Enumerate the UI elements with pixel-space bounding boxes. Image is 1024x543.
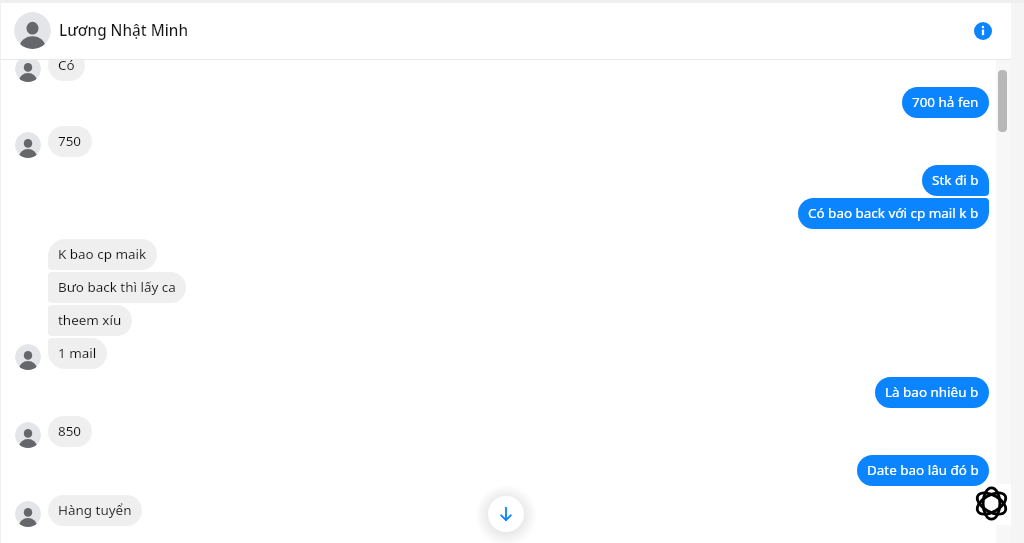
staticText: K bao cp maik <box>58 245 147 263</box>
staticText: Date bao lâu đó b <box>867 461 979 479</box>
button[interactable]: Stk đi b <box>922 165 989 196</box>
button[interactable]: K bao cp maik <box>48 239 157 270</box>
staticText: 750 <box>58 132 82 150</box>
button[interactable]: 750 <box>48 126 92 157</box>
button[interactable]: 700 hả fen <box>902 87 989 118</box>
button[interactable]: 1 mail <box>48 338 107 369</box>
staticText: Hàng tuyển <box>58 501 132 519</box>
button[interactable]: Hàng tuyển <box>48 495 142 526</box>
button[interactable]: Scroll to bottom <box>476 484 536 543</box>
staticText: Có <box>58 56 75 74</box>
staticText: Là bao nhiêu b <box>885 383 979 401</box>
button[interactable]: Lương Nhật Minh <box>0 2 1024 59</box>
staticText: 700 hả fen <box>912 93 979 111</box>
button[interactable]: Assistive overlay button <box>966 484 1024 525</box>
staticText: Bưo back thì lấy ca <box>58 278 176 296</box>
button[interactable]: Conversation information <box>964 12 1002 50</box>
button[interactable]: Có <box>48 50 85 81</box>
staticText: theem xíu <box>58 311 122 329</box>
button[interactable]: Date bao lâu đó b <box>857 455 989 486</box>
button[interactable]: theem xíu <box>48 305 132 336</box>
staticText: Stk đi b <box>932 171 979 189</box>
button[interactable]: Có bao back với cp mail k b <box>798 198 989 229</box>
staticText: Có bao back với cp mail k b <box>808 204 979 222</box>
button[interactable]: Là bao nhiêu b <box>875 377 989 408</box>
button[interactable]: Bưo back thì lấy ca <box>48 272 186 303</box>
button[interactable]: 850 <box>48 416 92 447</box>
staticText: Lương Nhật Minh <box>59 20 189 41</box>
staticText: 1 mail <box>58 344 97 362</box>
staticText: 850 <box>58 422 82 440</box>
